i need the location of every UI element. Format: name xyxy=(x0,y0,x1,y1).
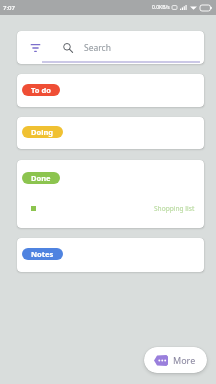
button[interactable]: Doing xyxy=(22,126,63,138)
staticText: To do xyxy=(31,85,51,95)
button[interactable]: Shopping list xyxy=(31,200,195,216)
staticText: 0.0KB/s xyxy=(152,4,170,11)
staticText: Shopping list xyxy=(154,204,195,213)
staticText: More xyxy=(173,354,196,366)
button[interactable]: Done xyxy=(17,160,204,228)
button[interactable]: Doing xyxy=(17,117,204,149)
button[interactable]: To do xyxy=(22,84,60,96)
button[interactable]: To do xyxy=(17,74,204,107)
button[interactable]: Notes xyxy=(17,238,204,272)
staticText: 7:07 xyxy=(3,4,15,12)
button[interactable]: More xyxy=(144,347,207,373)
button[interactable]: Done xyxy=(22,172,60,184)
staticText: Notes xyxy=(31,249,54,259)
button[interactable]: Notes xyxy=(22,248,63,260)
staticText: Search xyxy=(84,42,111,54)
button[interactable]: Filter xyxy=(28,41,42,55)
staticText: Doing xyxy=(31,127,54,137)
staticText: Done xyxy=(31,173,51,183)
button[interactable]: Filter xyxy=(17,31,204,64)
